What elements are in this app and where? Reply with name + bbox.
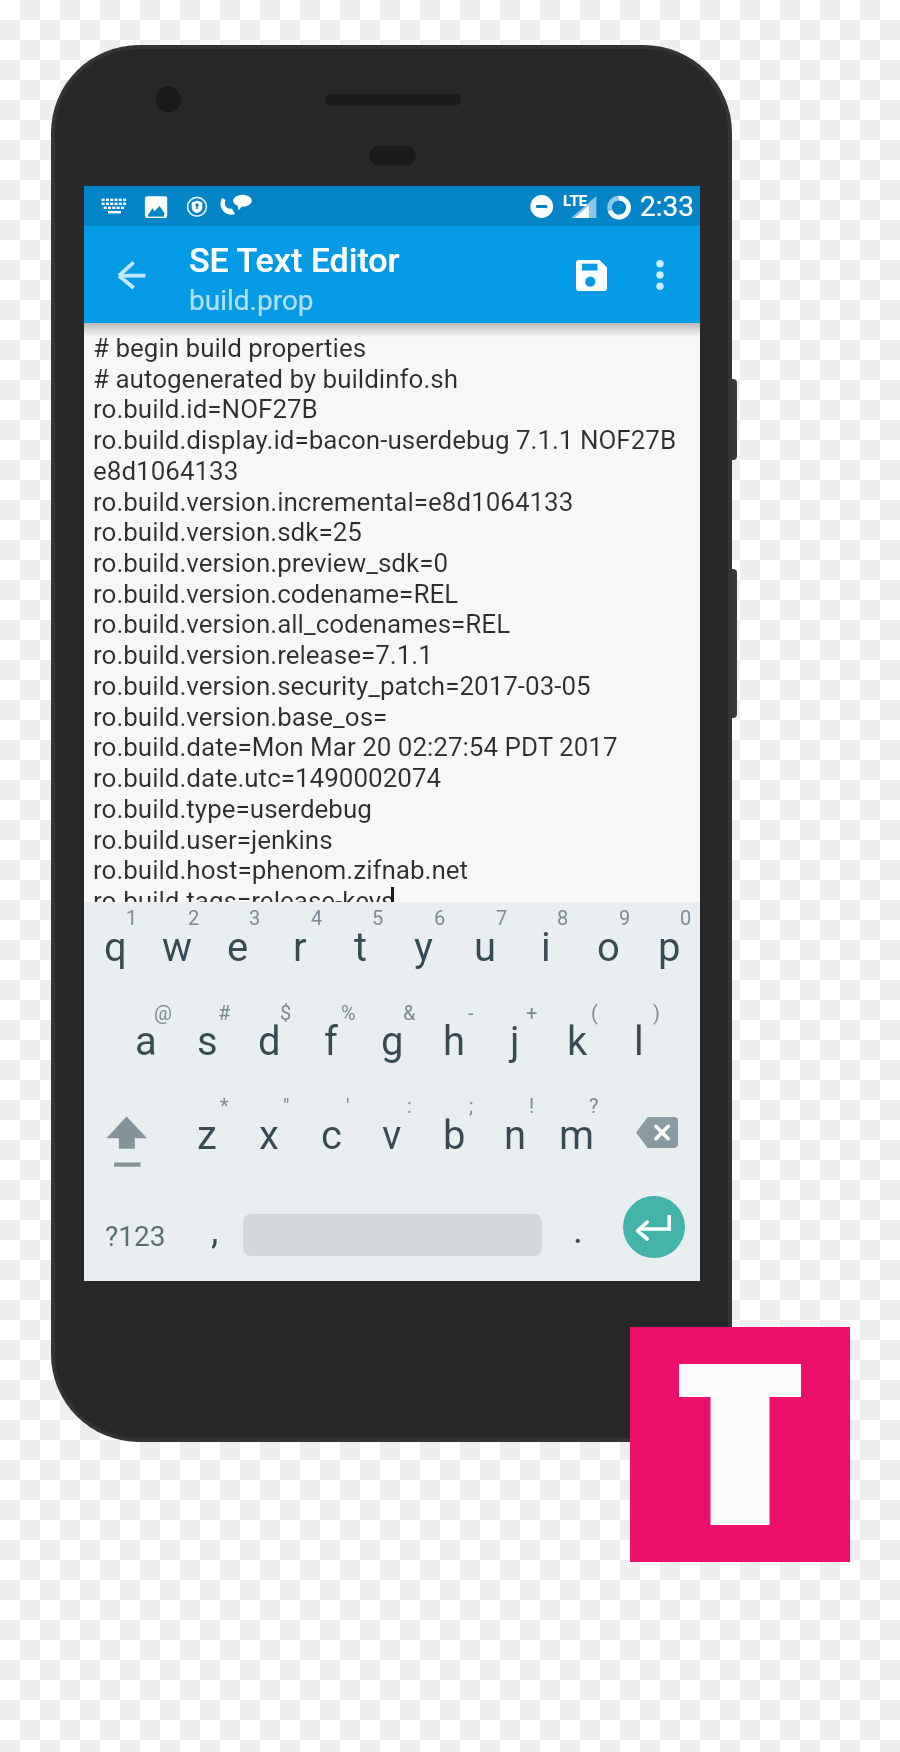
staticText: q <box>104 924 127 971</box>
staticText: n <box>504 1112 527 1159</box>
staticText: f <box>324 1018 338 1065</box>
button[interactable]: Period <box>548 1193 608 1281</box>
staticText: t <box>354 924 368 971</box>
staticText: ? <box>589 1094 599 1117</box>
staticText: ro.build.date.utc=1490002074 <box>93 763 442 793</box>
staticText: ' <box>346 1094 350 1117</box>
staticText: w <box>162 924 193 971</box>
button[interactable]: Comma <box>187 1193 242 1281</box>
staticText: i <box>541 924 551 971</box>
staticText: # <box>218 1001 231 1024</box>
button[interactable]: s <box>176 987 238 1079</box>
button[interactable]: m <box>546 1081 608 1173</box>
button[interactable]: z <box>176 1081 238 1173</box>
button[interactable]: h <box>423 987 485 1079</box>
staticText: - <box>468 1001 474 1024</box>
staticText: a <box>135 1018 157 1065</box>
staticText: ro.build.version.preview_sdk=0 <box>93 548 449 578</box>
staticText: 7 <box>496 906 508 929</box>
staticText: b <box>443 1112 466 1159</box>
button[interactable]: p <box>638 893 700 985</box>
button[interactable]: e <box>207 893 269 985</box>
staticText: 2 <box>188 906 200 929</box>
button[interactable]: r <box>269 893 331 985</box>
staticText: LTE <box>563 192 588 210</box>
button[interactable]: x <box>238 1081 300 1173</box>
staticText: m <box>559 1112 595 1159</box>
staticText: 0 <box>680 906 692 929</box>
staticText: ) <box>653 1001 660 1024</box>
staticText: 2:33 <box>640 190 694 223</box>
staticText: build.prop <box>189 284 314 317</box>
staticText: 5 <box>372 906 384 929</box>
staticText: k <box>567 1018 588 1065</box>
staticText: . <box>573 1208 584 1253</box>
button[interactable]: T logo <box>630 1327 850 1562</box>
button[interactable]: Navigate up <box>94 237 169 312</box>
button[interactable]: More options <box>632 247 688 303</box>
staticText: ro.build.tags=release-keys <box>93 886 395 902</box>
staticText: ; <box>469 1094 474 1117</box>
staticText: # autogenerated by buildinfo.sh <box>93 364 458 394</box>
button[interactable]: v <box>361 1081 423 1173</box>
staticText: l <box>634 1018 644 1065</box>
staticText: ro.build.type=userdebug <box>93 794 372 824</box>
staticText: ro.build.version.all_codenames=REL <box>93 609 511 639</box>
button[interactable]: q <box>84 893 146 985</box>
staticText: 6 <box>434 906 446 929</box>
button[interactable]: y <box>392 893 454 985</box>
button[interactable]: Enter <box>606 1182 702 1270</box>
staticText: ! <box>529 1094 535 1117</box>
staticText: 9 <box>619 906 631 929</box>
staticText: & <box>403 1001 416 1024</box>
button[interactable]: a <box>115 987 177 1079</box>
button[interactable]: k <box>546 987 608 1079</box>
staticText: g <box>381 1018 404 1065</box>
staticText: u <box>474 924 497 971</box>
staticText: e8d1064133 <box>93 456 239 486</box>
staticText: y <box>414 924 433 971</box>
staticText: ro.build.version.sdk=25 <box>93 517 362 547</box>
button[interactable]: u <box>454 893 516 985</box>
staticText: d <box>258 1018 281 1065</box>
staticText: v <box>382 1112 402 1159</box>
button[interactable]: j <box>484 987 546 1079</box>
staticText: # begin build properties <box>93 333 367 363</box>
staticText: c <box>321 1112 342 1159</box>
button[interactable]: o <box>577 893 639 985</box>
staticText: r <box>293 924 307 971</box>
staticText: p <box>658 924 681 971</box>
staticText: ro.build.display.id=bacon-userdebug 7.1.… <box>93 425 677 455</box>
staticText: $ <box>280 1001 292 1024</box>
button[interactable]: n <box>484 1081 546 1173</box>
button[interactable]: Save <box>556 240 626 310</box>
button[interactable]: d <box>238 987 300 1079</box>
button[interactable]: w <box>146 893 208 985</box>
button[interactable]: Shift <box>84 1097 176 1189</box>
staticText: , <box>211 1208 219 1253</box>
staticText: + <box>526 1001 538 1024</box>
staticText: ( <box>591 1001 598 1024</box>
staticText: z <box>197 1112 217 1159</box>
button[interactable]: i <box>515 893 577 985</box>
button[interactable]: l <box>608 987 670 1079</box>
staticText: @ <box>154 1001 172 1024</box>
button[interactable]: c <box>300 1081 362 1173</box>
staticText: 3 <box>249 906 261 929</box>
staticText: * <box>220 1094 229 1117</box>
button[interactable]: g <box>361 987 423 1079</box>
button[interactable]: f <box>300 987 362 1079</box>
staticText: 4 <box>311 906 323 929</box>
staticText: ro.build.date=Mon Mar 20 02:27:54 PDT 20… <box>93 732 618 762</box>
button[interactable]: Backspace <box>611 1086 703 1178</box>
button[interactable]: b <box>423 1081 485 1173</box>
button[interactable]: Symbols <box>84 1193 184 1281</box>
staticText: h <box>443 1018 466 1065</box>
button[interactable]: t <box>330 893 392 985</box>
button[interactable]: Space <box>239 1193 544 1281</box>
staticText: SE Text Editor <box>189 240 400 280</box>
staticText: e <box>227 924 249 971</box>
staticText: ro.build.version.security_patch=2017-03-… <box>93 671 591 701</box>
staticText: o <box>597 924 620 971</box>
staticText: ro.build.version.base_os= <box>93 702 388 732</box>
